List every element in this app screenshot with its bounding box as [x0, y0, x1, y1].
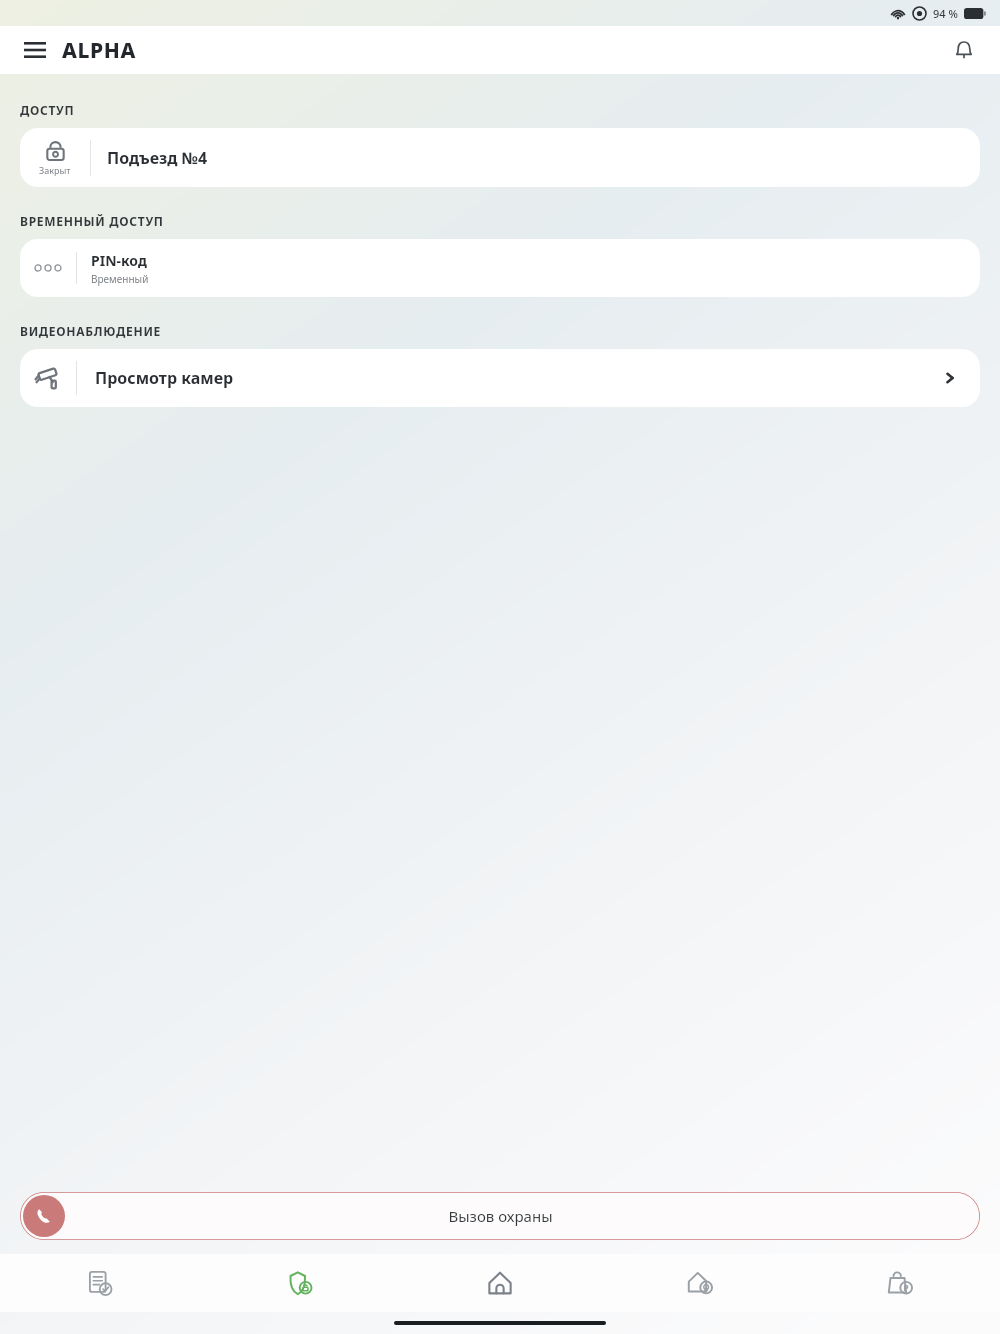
staticText: ВИДЕОНАБЛЮДЕНИЕ — [20, 323, 162, 339]
button[interactable]: PIN-код — [20, 239, 980, 297]
button[interactable]: Documents — [0, 1254, 200, 1312]
staticText: Просмотр камер — [95, 367, 234, 389]
staticText: Вызов охраны — [448, 1206, 553, 1226]
staticText: ВРЕМЕННЫЙ ДОСТУП — [20, 213, 164, 229]
staticText: Подъезд №4 — [107, 147, 208, 169]
staticText: 94 % — [933, 6, 958, 21]
button[interactable]: Home — [400, 1254, 600, 1312]
button[interactable]: Shop — [800, 1254, 1000, 1312]
button[interactable]: Security — [200, 1254, 400, 1312]
staticText: Закрыт — [39, 164, 71, 176]
button[interactable]: Закрыт — [20, 128, 980, 187]
staticText: ДОСТУП — [20, 102, 75, 118]
button[interactable]: Menu — [18, 33, 52, 67]
button[interactable]: Smart home — [600, 1254, 800, 1312]
staticText: PIN-код — [91, 251, 147, 270]
staticText: ALPHA — [62, 36, 136, 65]
button[interactable]: Notifications — [944, 30, 984, 70]
button[interactable]: Вызов охраны — [20, 1192, 980, 1240]
staticText: Временный — [91, 272, 149, 286]
button[interactable]: Просмотр камер — [20, 349, 980, 407]
